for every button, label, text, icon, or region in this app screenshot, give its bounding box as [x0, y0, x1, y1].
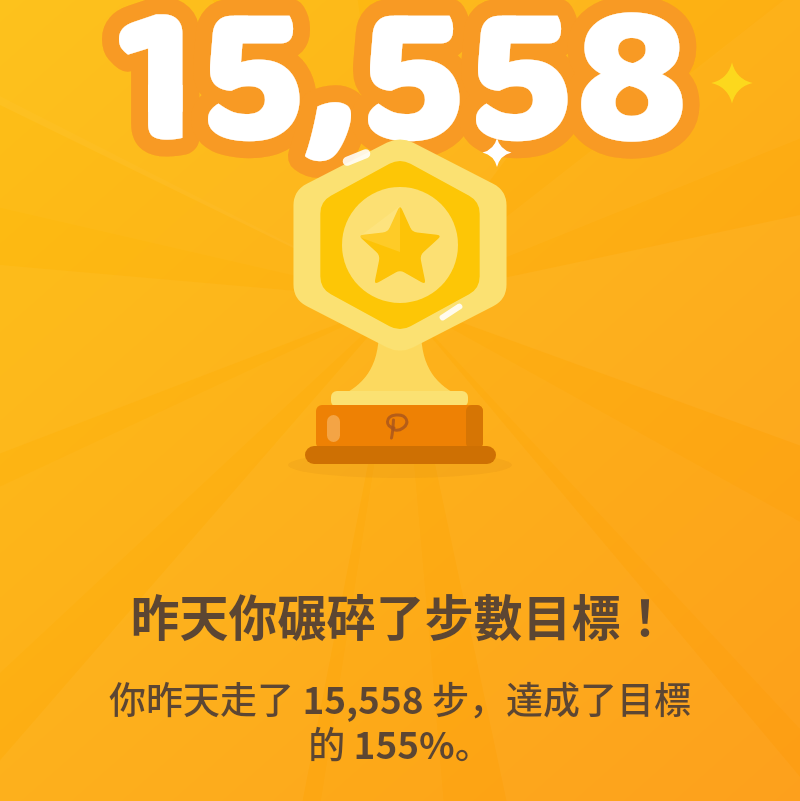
button[interactable]: Step goal achievement — [0, 0, 800, 801]
